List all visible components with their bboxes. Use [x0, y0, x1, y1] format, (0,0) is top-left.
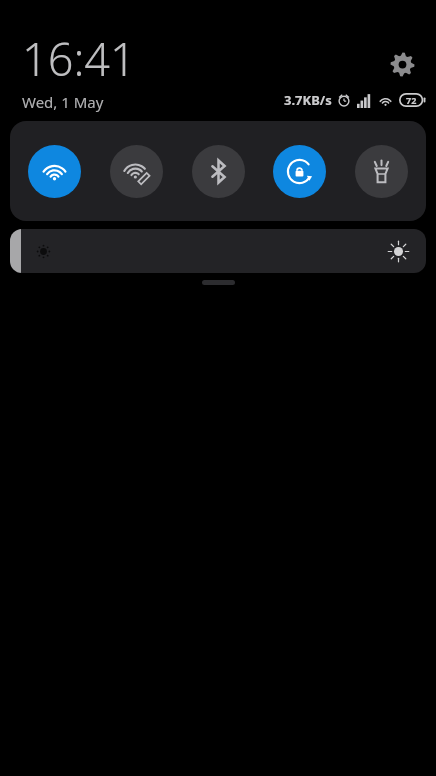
- staticText: 72: [406, 94, 417, 106]
- button[interactable]: Rotation lock: [273, 145, 326, 198]
- button[interactable]: Flashlight: [355, 145, 408, 198]
- button[interactable]: Wi-Fi: [28, 145, 81, 198]
- button[interactable]: Brightness: [10, 229, 426, 273]
- button[interactable]: Bluetooth: [192, 145, 245, 198]
- staticText: 16:41: [22, 28, 136, 89]
- button[interactable]: Wi-Fi settings: [110, 145, 163, 198]
- button[interactable]: Expand panel: [202, 280, 235, 285]
- button[interactable]: Settings: [380, 42, 424, 86]
- staticText: Wed, 1 May: [22, 92, 104, 112]
- staticText: 3.7KB/s: [284, 91, 332, 109]
